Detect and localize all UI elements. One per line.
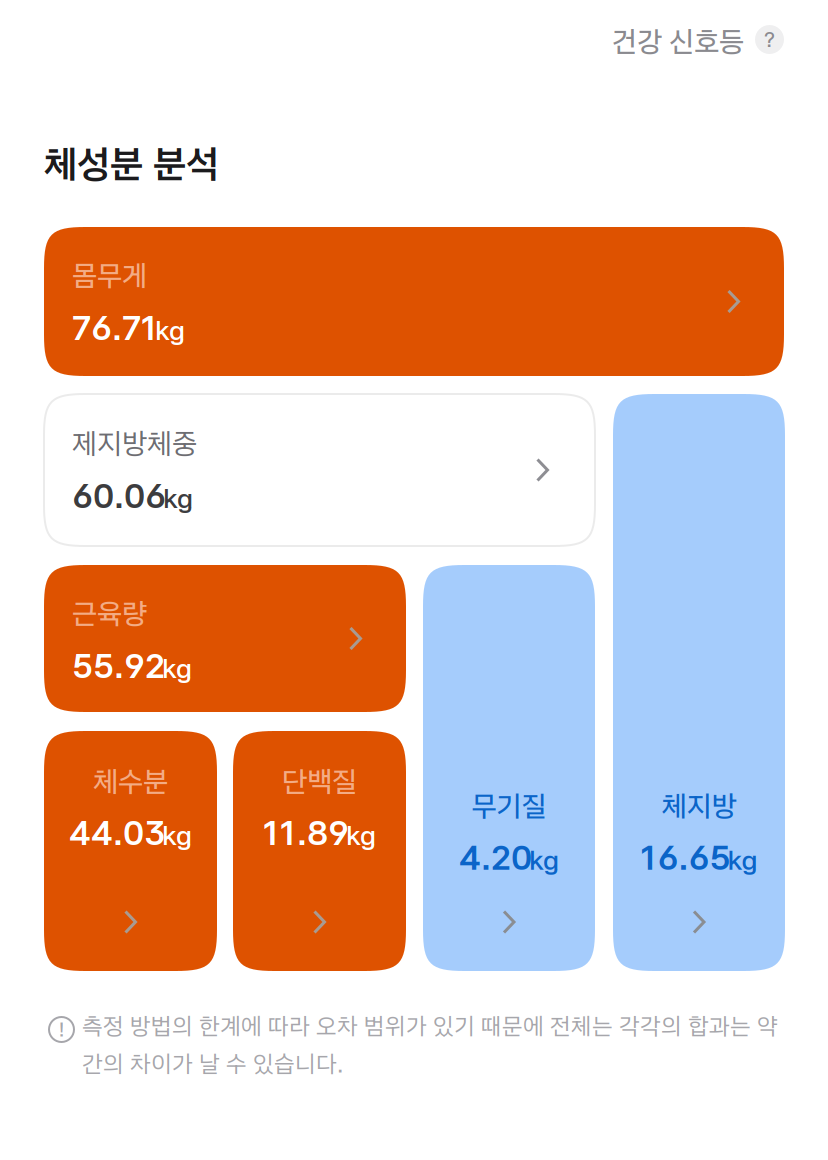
staticText: 제지방체중 — [72, 426, 197, 461]
staticText: 11.89 — [263, 812, 349, 853]
button[interactable]: 체지방 — [613, 394, 785, 971]
button[interactable]: 체수분 — [44, 731, 217, 971]
staticText: 4.20 — [459, 837, 532, 878]
staticText: 체지방 — [661, 789, 736, 824]
staticText: 근육량 — [72, 596, 147, 631]
staticText: kg — [727, 844, 757, 876]
button[interactable]: 건강 신호등 — [600, 16, 790, 63]
staticText: 55.92 — [72, 645, 165, 686]
staticText: 무기질 — [471, 789, 546, 824]
staticText: 76.71 — [72, 307, 158, 348]
staticText: 건강 신호등 — [612, 24, 744, 59]
staticText: 60.06 — [72, 475, 166, 516]
button[interactable]: 몸무게 — [44, 227, 784, 376]
staticText: ! — [59, 1018, 64, 1041]
button[interactable]: 근육량 — [44, 565, 406, 712]
staticText: kg — [162, 653, 192, 684]
button[interactable]: 단백질 — [233, 731, 406, 971]
staticText: kg — [163, 483, 193, 514]
staticText: 16.65 — [640, 837, 730, 878]
staticText: 44.03 — [69, 812, 165, 853]
staticText: kg — [155, 315, 185, 346]
staticText: 몸무게 — [72, 258, 147, 293]
staticText: kg — [529, 844, 559, 876]
staticText: 단백질 — [282, 764, 357, 799]
button[interactable]: 무기질 — [423, 565, 595, 971]
staticText: 체수분 — [93, 764, 168, 799]
staticText: 체성분 분석 — [44, 141, 219, 187]
button[interactable]: 제지방체중 — [44, 394, 595, 546]
staticText: kg — [162, 820, 192, 851]
staticText: 측정 방법의 한계에 따라 오차 범위가 있기 때문에 전체는 각각의 합과는 … — [82, 1012, 778, 1078]
staticText: ? — [764, 27, 775, 52]
staticText: kg — [346, 820, 376, 851]
